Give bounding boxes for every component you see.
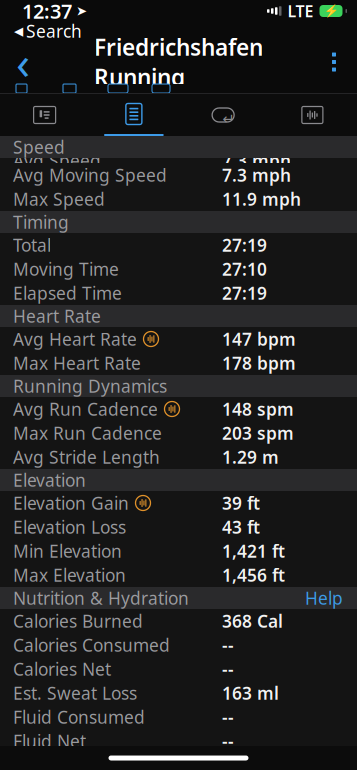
staticText: 1,456 ft [222, 563, 285, 586]
staticText: 27:19 [222, 281, 267, 304]
staticText: Search [26, 19, 82, 42]
staticText: Help [305, 586, 343, 609]
button[interactable]: Min Elevation [0, 539, 357, 563]
staticText: Avg Moving Speed [13, 163, 167, 186]
button[interactable]: Details [89, 94, 178, 136]
staticText: 1.29 m [222, 445, 279, 468]
button[interactable]: Est. Sweat Loss [0, 681, 357, 705]
button[interactable]: Total [0, 233, 357, 257]
button[interactable]: Elapsed Time [0, 281, 357, 305]
button[interactable]: More options [311, 40, 357, 84]
staticText: Fluid Net [13, 729, 86, 752]
button[interactable]: Max Speed [0, 187, 357, 211]
button[interactable]: Moving Time [0, 257, 357, 281]
staticText: 163 ml [222, 681, 279, 704]
staticText: 12:37 [22, 0, 72, 24]
staticText: Running Dynamics [13, 374, 167, 397]
staticText: LTE [287, 0, 313, 22]
staticText: Calories Consumed [13, 633, 170, 656]
staticText: Avg Speed [13, 149, 101, 172]
staticText: Min Elevation [13, 539, 122, 562]
staticText: 1,421 ft [222, 539, 285, 562]
button[interactable]: Max Heart Rate [0, 351, 357, 375]
staticText: Max Speed [13, 187, 105, 210]
button[interactable]: Avg Stride Length [0, 445, 357, 469]
staticText: Speed [13, 135, 65, 158]
staticText: 203 spm [222, 421, 294, 444]
staticText: Total [13, 233, 51, 256]
button[interactable]: Help [305, 586, 343, 609]
button[interactable]: Calories Consumed [0, 633, 357, 657]
staticText: 147 bpm [222, 327, 296, 350]
button[interactable]: Avg Moving Speed [0, 163, 357, 187]
staticText: -- [222, 705, 234, 728]
button[interactable]: Charts [268, 94, 357, 136]
button[interactable]: Map [0, 94, 89, 136]
staticText: 148 spm [222, 397, 294, 420]
staticText: ➤ [76, 3, 87, 18]
staticText: 7.3 mph [222, 163, 291, 186]
button[interactable]: Avg Speed [0, 148, 357, 172]
staticText: 39 ft [222, 491, 260, 514]
button[interactable]: Calories Net [0, 657, 357, 681]
staticText: Avg Heart Rate [13, 327, 137, 350]
button[interactable]: ◀ [14, 19, 82, 42]
button[interactable]: Fluid Net [0, 729, 357, 753]
staticText: 368 Cal [222, 609, 283, 632]
button[interactable]: Avg Run Cadence [0, 397, 357, 421]
staticText: -- [222, 729, 234, 752]
staticText: Friedrichshafen Running [94, 32, 263, 92]
button[interactable]: Calories Burned [0, 609, 357, 633]
staticText: ↵ [222, 111, 234, 127]
staticText: 178 bpm [222, 351, 296, 374]
staticText: ⚡ [323, 4, 338, 18]
button[interactable]: Elevation Loss [0, 515, 357, 539]
staticText: 11.9 mph [222, 187, 301, 210]
staticText: Elevation Gain [13, 491, 129, 514]
staticText: Calories Burned [13, 609, 143, 632]
staticText: Timing [13, 210, 69, 233]
staticText: -- [222, 657, 234, 680]
staticText: Max Run Cadence [13, 421, 162, 444]
button[interactable]: Laps [178, 94, 268, 136]
staticText: ◀ [14, 24, 23, 38]
staticText: Elapsed Time [13, 281, 122, 304]
staticText: 27:10 [222, 257, 267, 280]
button[interactable]: Max Elevation [0, 563, 357, 587]
staticText: Elevation Loss [13, 515, 126, 538]
staticText: Fluid Consumed [13, 705, 145, 728]
button[interactable]: Elevation Gain [0, 491, 357, 515]
staticText: Est. Sweat Loss [13, 681, 137, 704]
staticText: 7.3 mph [222, 149, 291, 172]
staticText: Elevation [13, 468, 86, 491]
staticText: 43 ft [222, 515, 260, 538]
button[interactable]: Back [0, 40, 46, 84]
staticText: -- [222, 633, 234, 656]
staticText: Max Heart Rate [13, 351, 141, 374]
staticText: Avg Stride Length [13, 445, 160, 468]
button[interactable]: Fluid Consumed [0, 705, 357, 729]
staticText: Calories Net [13, 657, 111, 680]
staticText: 27:19 [222, 233, 267, 256]
button[interactable]: Avg Heart Rate [0, 327, 357, 351]
staticText: Max Elevation [13, 563, 126, 586]
staticText: Heart Rate [13, 304, 101, 327]
staticText: Nutrition & Hydration [13, 586, 189, 609]
button[interactable]: Max Run Cadence [0, 421, 357, 445]
staticText: ‹ [16, 32, 30, 92]
staticText: Avg Run Cadence [13, 397, 158, 420]
staticText: Moving Time [13, 257, 119, 280]
